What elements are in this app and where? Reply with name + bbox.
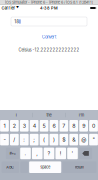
button[interactable]: 2 [10,120,19,132]
staticText: ( [43,136,45,143]
staticText: - [3,136,5,143]
staticText: 4:38 PM [40,6,58,10]
button[interactable]: ! [55,148,66,159]
button[interactable]: / [10,134,19,145]
staticText: 4 [33,123,36,129]
button[interactable]: & [69,134,78,145]
staticText: ▼ [16,6,19,10]
button[interactable]: the [33,110,65,120]
button[interactable]: 4 [30,120,39,132]
button[interactable]: 5 [40,120,48,132]
button[interactable]: " [89,134,98,145]
button[interactable]: 6 [50,120,58,132]
staticText: / [13,136,15,143]
staticText: #+= [9,151,15,156]
button[interactable]: . [20,148,31,159]
button[interactable]: I [0,110,32,120]
button[interactable]: 7 [59,120,68,132]
button[interactable]: #+= [6,148,19,159]
button[interactable]: 8 [69,120,78,132]
staticText: 3 [23,123,26,129]
staticText: space [40,165,50,169]
button[interactable]: ; [30,134,39,145]
staticText: I'm [79,113,85,117]
button[interactable]: return [62,161,96,173]
button[interactable]: ABC [1,161,19,173]
staticText: & [72,136,75,143]
button[interactable]: ? [44,148,54,159]
staticText: 2 [13,123,16,129]
button[interactable]: 0 [89,120,98,132]
staticText: 8 [72,123,75,129]
staticText: ? [47,150,50,157]
staticText: " [93,136,95,143]
staticText: : [23,136,25,143]
staticText: Carrier [1,6,15,10]
staticText: I [16,113,17,117]
staticText: @ [81,136,86,143]
button[interactable]: I'm [66,110,98,120]
button[interactable]: Delete [79,148,92,159]
button[interactable]: ' [67,148,78,159]
staticText: Celsius -12.2222222222222 [18,47,79,52]
staticText: 18 [14,19,19,24]
staticText: iOS Simulator - iPhone 6 - iPhone 6 / iO… [5,0,93,5]
button[interactable]: @ [79,134,88,145]
button[interactable]: space [29,161,61,173]
button[interactable]: $ [59,134,68,145]
staticText: . [24,150,26,157]
button[interactable]: 9 [79,120,88,132]
button[interactable]: 1 [0,120,9,132]
staticText: ' [71,150,73,157]
staticText: 0 [92,123,95,129]
button[interactable]: ) [50,134,58,145]
button[interactable]: 3 [20,120,29,132]
button[interactable]: : [20,134,29,145]
staticText: 6 [52,123,55,129]
button[interactable]: Convert [0,32,98,41]
staticText: , [36,150,38,157]
staticText: ! [60,150,62,157]
staticText: 9 [82,123,85,129]
button[interactable]: - [0,134,9,145]
staticText: return [75,165,84,169]
staticText: $ [62,136,65,143]
button[interactable]: ( [40,134,48,145]
staticText: ; [33,136,35,143]
staticText: 7 [62,123,65,129]
staticText: ) [53,136,55,143]
staticText: 1 [3,123,5,129]
staticText: Convert [42,34,56,39]
staticText: ABC [6,165,14,169]
staticText: 5 [43,123,46,129]
button[interactable]: , [32,148,42,159]
staticText: the [46,113,51,117]
